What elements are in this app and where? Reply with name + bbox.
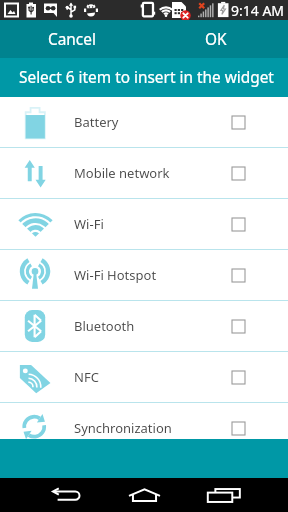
- staticText: Select 6 item to insert in the widget: [19, 67, 274, 88]
- staticText: Wi-Fi Hotspot: [74, 266, 157, 284]
- button[interactable]: Bluetooth: [0, 301, 288, 351]
- staticText: Wi-Fi: [74, 215, 104, 233]
- button[interactable]: Wi-Fi: [0, 199, 288, 249]
- staticText: OK: [205, 29, 227, 50]
- button[interactable]: Home: [111, 478, 177, 512]
- staticText: 9:14 AM: [231, 1, 285, 20]
- staticText: Battery: [74, 113, 119, 131]
- staticText: Cancel: [48, 29, 96, 50]
- button[interactable]: OK: [144, 20, 288, 58]
- staticText: Synchronization: [74, 419, 172, 437]
- button[interactable]: Mobile network: [0, 148, 288, 198]
- button[interactable]: Recent apps: [191, 478, 257, 512]
- staticText: Mobile network: [74, 164, 170, 182]
- staticText: NFC: [74, 368, 99, 386]
- button[interactable]: Battery: [0, 97, 288, 147]
- button[interactable]: Back: [33, 478, 99, 512]
- button[interactable]: Synchronization: [0, 403, 288, 453]
- button[interactable]: Wi-Fi Hotspot: [0, 250, 288, 300]
- button[interactable]: NFC: [0, 352, 288, 402]
- staticText: Bluetooth: [74, 317, 135, 335]
- button[interactable]: Cancel: [0, 20, 144, 58]
